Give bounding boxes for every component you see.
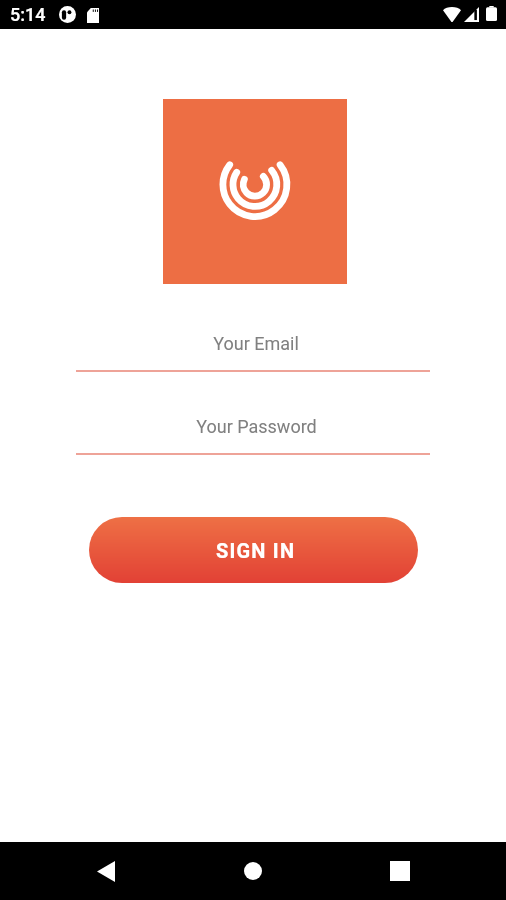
staticText: Your Email: [213, 333, 299, 354]
staticText: 5:14: [10, 4, 46, 25]
button[interactable]: Recent apps: [372, 842, 428, 900]
button[interactable]: Your Password: [76, 405, 430, 455]
button[interactable]: SIGN IN: [89, 517, 418, 583]
staticText: SIGN IN: [216, 539, 296, 562]
button[interactable]: Your Email: [76, 322, 430, 372]
button[interactable]: Back: [78, 842, 134, 900]
staticText: Your Password: [196, 416, 317, 437]
button[interactable]: Home: [225, 842, 281, 900]
